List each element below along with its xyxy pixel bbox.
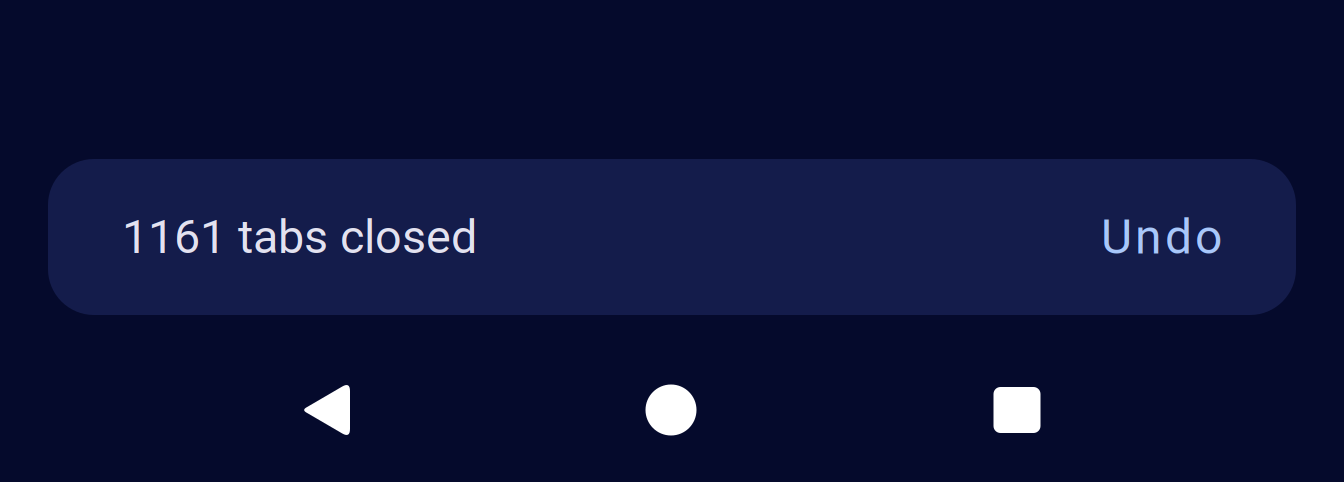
staticText: 1161 tabs closed: [122, 210, 477, 264]
staticText: Undo: [1101, 209, 1222, 265]
button[interactable]: Undo: [1075, 183, 1248, 291]
button[interactable]: Recent apps: [930, 370, 1104, 448]
button[interactable]: Home: [584, 370, 758, 448]
button[interactable]: Back: [239, 370, 413, 448]
